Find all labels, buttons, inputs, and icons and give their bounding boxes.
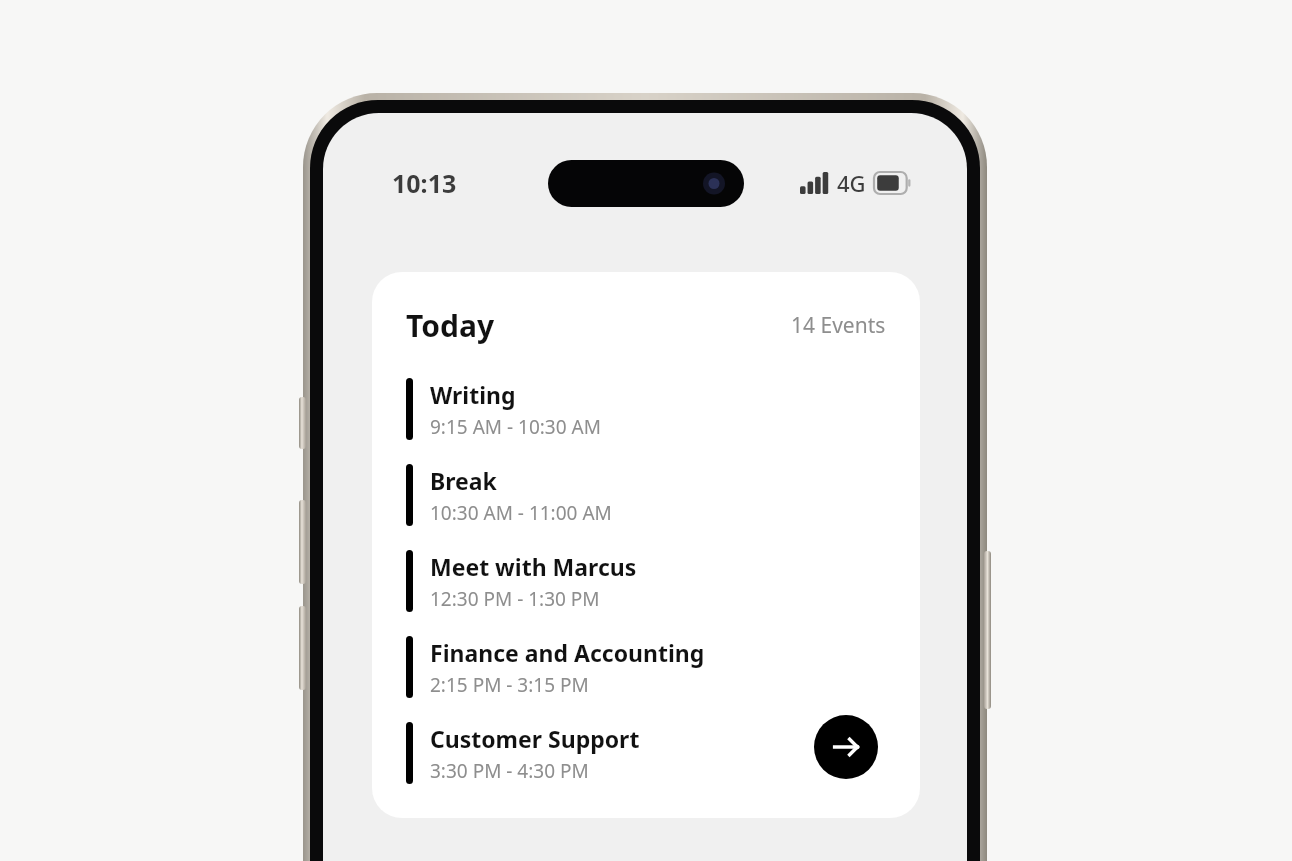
button[interactable]: Finance and Accounting	[406, 632, 876, 702]
staticText: 10:13	[392, 166, 457, 200]
staticText: Customer Support	[430, 723, 640, 754]
staticText: Writing	[430, 379, 516, 410]
button[interactable]: Customer Support	[406, 718, 876, 788]
staticText: 4G	[837, 168, 866, 198]
staticText: 3:30 PM - 4:30 PM	[430, 758, 589, 784]
staticText: Today	[406, 305, 495, 346]
staticText: Meet with Marcus	[430, 551, 637, 582]
staticText: 9:15 AM - 10:30 AM	[430, 414, 601, 440]
button[interactable]: Writing	[406, 374, 876, 444]
staticText: Finance and Accounting	[430, 637, 705, 668]
button[interactable]: Break	[406, 460, 876, 530]
staticText: Break	[430, 465, 497, 496]
staticText: 14 Events	[791, 311, 886, 340]
staticText: 2:15 PM - 3:15 PM	[430, 672, 589, 698]
staticText: 12:30 PM - 1:30 PM	[430, 586, 600, 612]
button[interactable]: Next	[814, 715, 878, 779]
button[interactable]: Meet with Marcus	[406, 546, 876, 616]
staticText: 10:30 AM - 11:00 AM	[430, 500, 612, 526]
